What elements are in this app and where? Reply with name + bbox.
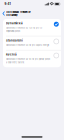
- staticText: Rychlá: [6, 53, 17, 56]
- button[interactable]: Dynamická: [3, 19, 61, 36]
- staticText: Obnovovací frekvence až 90 Hz pro plynul…: [6, 58, 50, 64]
- button[interactable]: Standardní: [3, 36, 61, 50]
- button[interactable]: Rychlá: [3, 50, 61, 67]
- staticText: Dynamická: [6, 22, 23, 25]
- staticText: Standardní: [6, 39, 23, 42]
- button[interactable]: Back: [2, 11, 5, 16]
- staticText: Obnovovací frekvence až 120 Hz pro co ne…: [6, 27, 42, 32]
- staticText: 9:41: [5, 2, 11, 6]
- staticText: Obnovovací frekvence obrazovky: [6, 10, 30, 16]
- staticText: Obnovovací frekvence 60 Hz pro úsporu en…: [6, 44, 50, 46]
